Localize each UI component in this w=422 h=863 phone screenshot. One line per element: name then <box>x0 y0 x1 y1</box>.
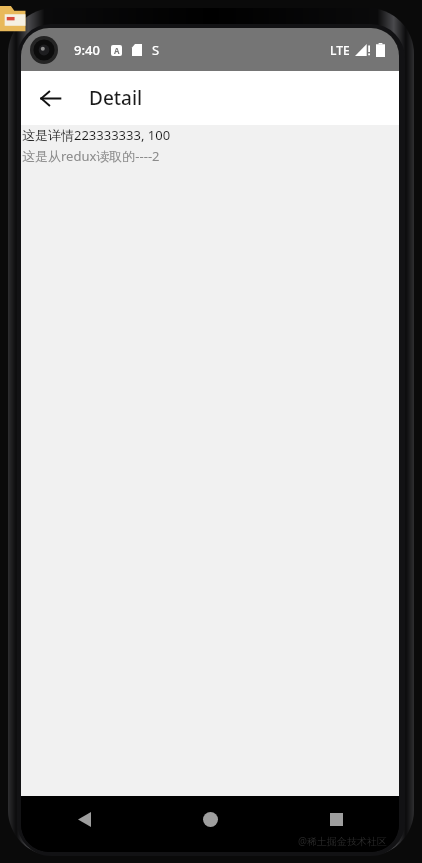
staticText: LTE <box>330 42 350 58</box>
staticText: @稀土掘金技术社区 <box>298 834 387 848</box>
staticText: 这是详情223333333, 100 <box>22 126 171 144</box>
button[interactable]: Home <box>147 802 273 836</box>
staticText: 这是从redux读取的----2 <box>22 147 160 165</box>
staticText: A <box>114 45 120 56</box>
staticText: S <box>152 41 160 59</box>
button[interactable]: Back <box>21 802 147 836</box>
button[interactable]: Recent apps <box>273 802 399 836</box>
button[interactable]: Back <box>28 76 72 120</box>
staticText: Detail <box>89 85 143 111</box>
staticText: 9:40 <box>74 41 100 59</box>
